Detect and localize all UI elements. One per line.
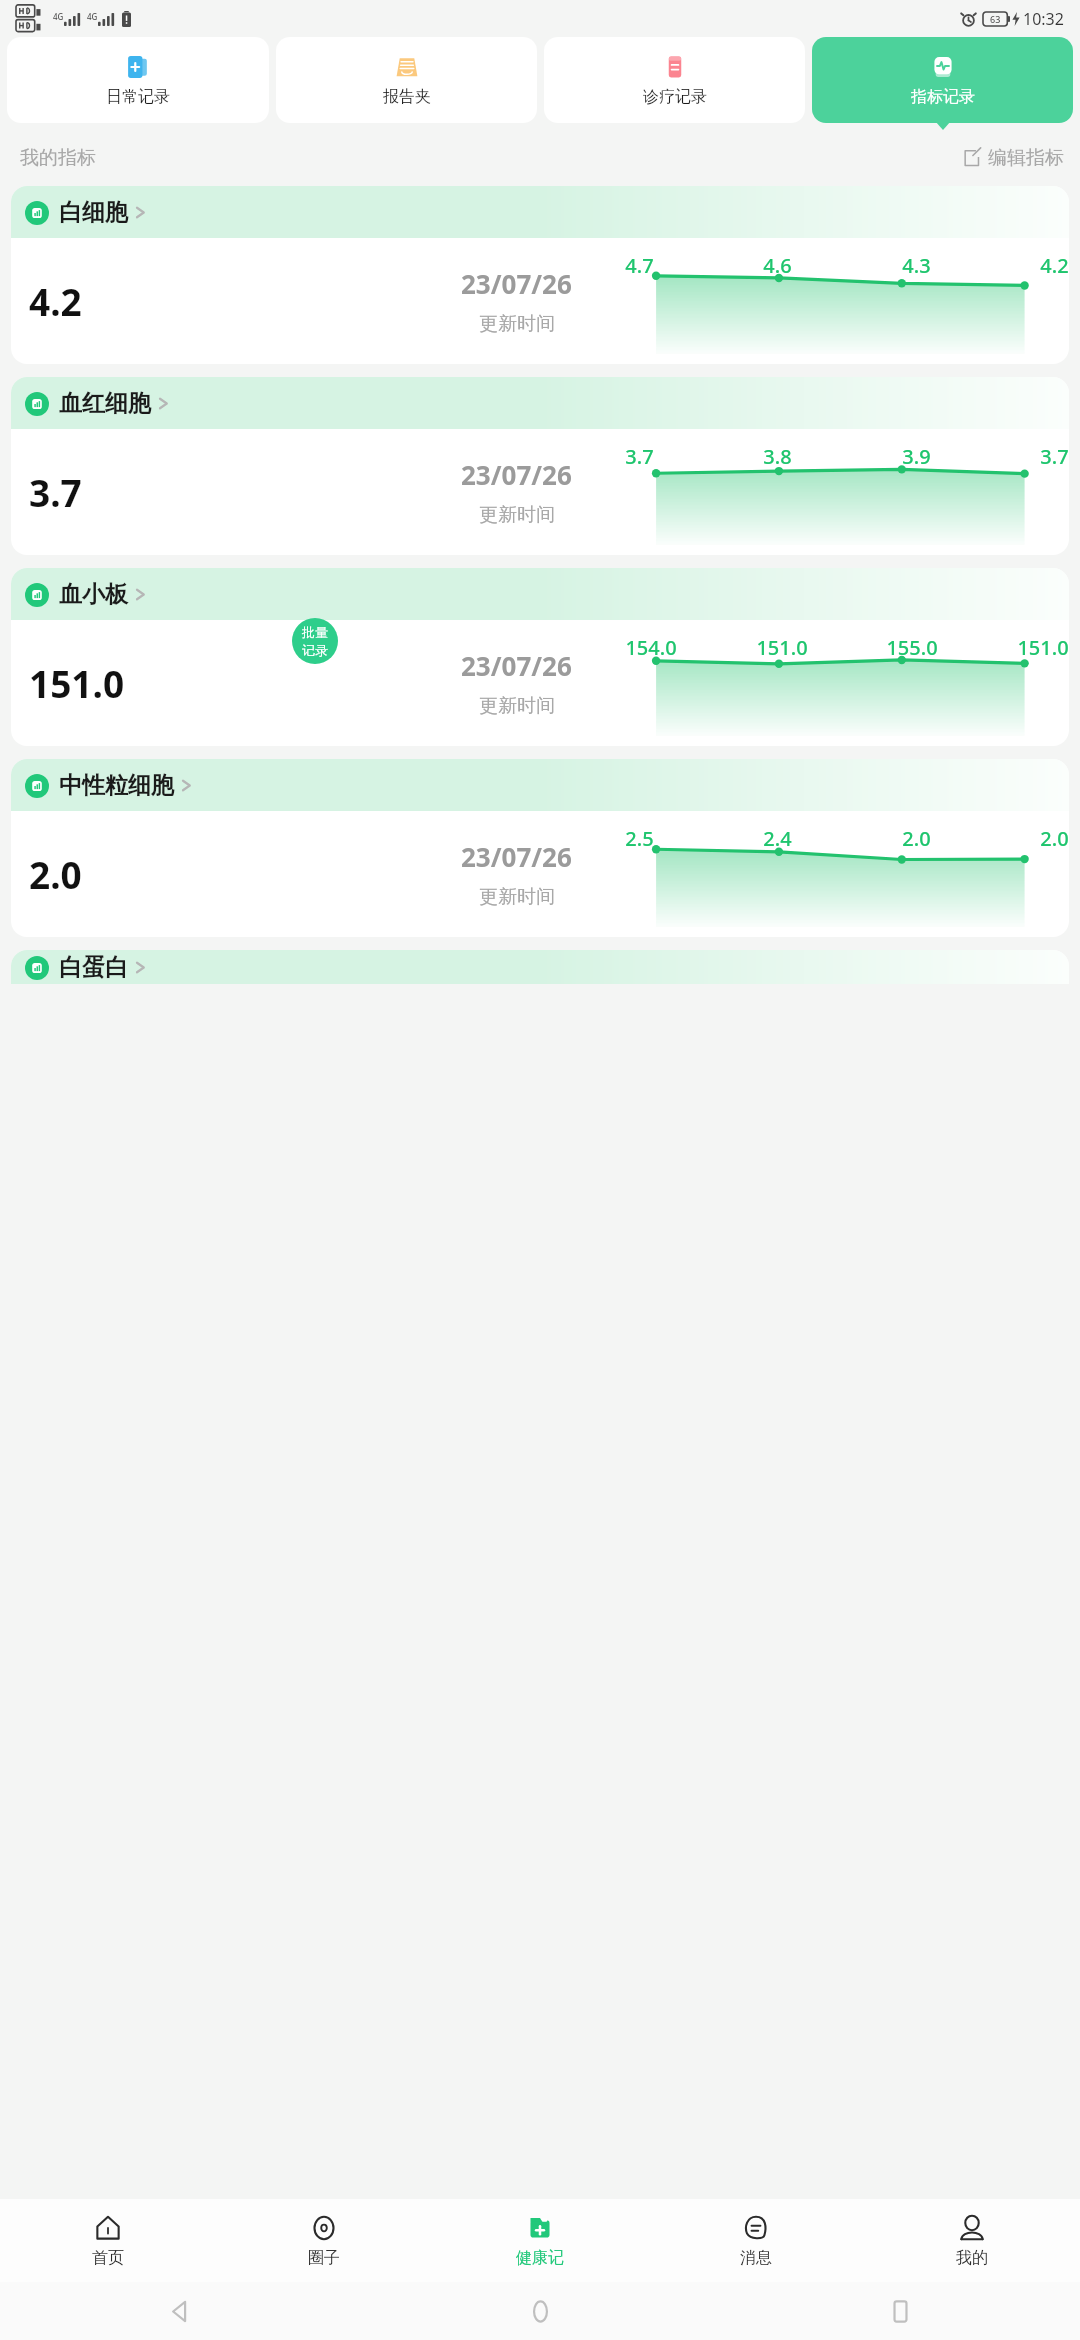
- other: Home: [529, 2300, 552, 2323]
- staticText: 151.0: [29, 658, 125, 708]
- staticText: 151.0: [1017, 634, 1069, 661]
- staticText: 更新时间: [479, 312, 555, 336]
- staticText: 圈子: [308, 2248, 340, 2268]
- staticText: 3.7: [625, 443, 654, 470]
- staticText: 2.4: [763, 825, 792, 852]
- button[interactable]: 批量记录: [292, 618, 338, 664]
- button[interactable]: 我的: [864, 2199, 1080, 2282]
- button[interactable]: 诊疗记录: [544, 37, 805, 123]
- staticText: 白蛋白: [59, 953, 128, 982]
- staticText: 2.0: [902, 825, 931, 852]
- staticText: 消息: [740, 2248, 772, 2268]
- staticText: 血红细胞: [59, 389, 151, 418]
- button[interactable]: 指标记录: [812, 37, 1073, 123]
- staticText: 指标记录: [911, 87, 975, 107]
- staticText: 3.7: [29, 467, 82, 517]
- button[interactable]: 编辑指标: [963, 146, 1064, 170]
- staticText: 首页: [92, 2248, 124, 2268]
- staticText: 151.0: [756, 634, 808, 661]
- button[interactable]: 首页: [0, 2199, 216, 2282]
- staticText: 诊疗记录: [643, 87, 707, 107]
- staticText: 154.0: [625, 634, 677, 661]
- staticText: 4.2: [1040, 252, 1069, 279]
- button[interactable]: 健康记: [432, 2199, 648, 2282]
- staticText: 报告夹: [383, 87, 431, 107]
- staticText: 更新时间: [479, 694, 555, 718]
- staticText: 3.9: [902, 443, 931, 470]
- staticText: 4G: [53, 11, 64, 22]
- button[interactable]: 血小板: [11, 568, 1069, 746]
- staticText: 155.0: [886, 634, 938, 661]
- staticText: 2.0: [29, 849, 82, 899]
- button[interactable]: 中性粒细胞: [11, 759, 1069, 937]
- staticText: 3.8: [763, 443, 792, 470]
- button[interactable]: 日常记录: [7, 37, 269, 123]
- staticText: 4.6: [763, 252, 792, 279]
- button[interactable]: 报告夹: [276, 37, 537, 123]
- staticText: 23/07/26: [461, 648, 572, 683]
- staticText: 日常记录: [106, 87, 170, 107]
- staticText: 更新时间: [479, 503, 555, 527]
- staticText: 4.2: [29, 276, 82, 326]
- staticText: 10:32: [1023, 8, 1064, 30]
- staticText: 3.7: [1040, 443, 1069, 470]
- staticText: 4G: [87, 11, 98, 22]
- staticText: 记录: [302, 642, 328, 658]
- other: Recent apps: [889, 2300, 912, 2323]
- staticText: 23/07/26: [461, 457, 572, 492]
- staticText: 2.5: [625, 825, 654, 852]
- button[interactable]: 白蛋白: [11, 950, 1069, 984]
- staticText: 4.3: [902, 252, 931, 279]
- staticText: 23/07/26: [461, 266, 572, 301]
- staticText: 健康记: [516, 2248, 564, 2268]
- button[interactable]: 消息: [648, 2199, 864, 2282]
- staticText: 批量: [302, 624, 328, 640]
- button[interactable]: 血红细胞: [11, 377, 1069, 555]
- staticText: 4.7: [625, 252, 654, 279]
- button[interactable]: 白细胞: [11, 186, 1069, 364]
- button[interactable]: 圈子: [216, 2199, 432, 2282]
- staticText: 白细胞: [59, 198, 128, 227]
- staticText: 编辑指标: [988, 146, 1064, 170]
- staticText: 我的: [956, 2248, 988, 2268]
- other: Back: [169, 2300, 192, 2323]
- staticText: 中性粒细胞: [59, 771, 174, 800]
- staticText: 23/07/26: [461, 839, 572, 874]
- staticText: 我的指标: [20, 146, 96, 170]
- staticText: 更新时间: [479, 885, 555, 909]
- staticText: 63: [990, 13, 1001, 25]
- staticText: 2.0: [1040, 825, 1069, 852]
- staticText: 血小板: [59, 580, 128, 609]
